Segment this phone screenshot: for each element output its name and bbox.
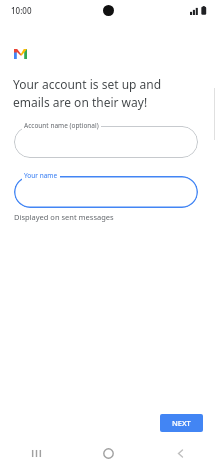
button[interactable]: NEXT xyxy=(160,414,203,432)
button[interactable] xyxy=(14,126,198,158)
button[interactable]: Back xyxy=(144,438,216,468)
button[interactable]: Recent apps xyxy=(0,438,72,468)
staticText: Your name xyxy=(24,171,58,180)
staticText: emails are on their way! xyxy=(13,94,148,110)
staticText: Account name (optional) xyxy=(24,121,99,130)
staticText: Displayed on sent messages xyxy=(14,212,114,222)
button[interactable]: Home xyxy=(72,438,144,468)
staticText: NEXT xyxy=(172,418,191,428)
staticText: 10:00 xyxy=(11,5,32,16)
staticText: Your account is set up and xyxy=(13,76,162,92)
button[interactable] xyxy=(14,176,198,208)
